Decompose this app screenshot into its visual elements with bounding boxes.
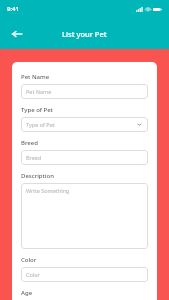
button[interactable]: Pet Name — [21, 84, 148, 99]
staticText: Description — [21, 172, 54, 180]
staticText: Breed — [26, 154, 143, 161]
button[interactable]: Color — [21, 267, 148, 282]
staticText: Type of Pet — [26, 121, 136, 128]
staticText: Write Something — [26, 187, 143, 194]
staticText: Color — [26, 271, 143, 278]
staticText: 9:41 — [7, 5, 19, 13]
staticText: List your Pet — [62, 29, 107, 39]
button[interactable]: Write Something — [21, 183, 148, 249]
staticText: Type of Pet — [21, 106, 53, 114]
staticText: Age — [21, 289, 33, 297]
staticText: Pet Name — [26, 88, 143, 95]
button[interactable]: Breed — [21, 150, 148, 165]
staticText: Pet Name — [21, 73, 50, 81]
staticText: Breed — [21, 139, 38, 147]
staticText: Color — [21, 256, 37, 264]
button[interactable]: Type of Pet — [21, 117, 148, 132]
button[interactable]: Back — [6, 23, 28, 45]
